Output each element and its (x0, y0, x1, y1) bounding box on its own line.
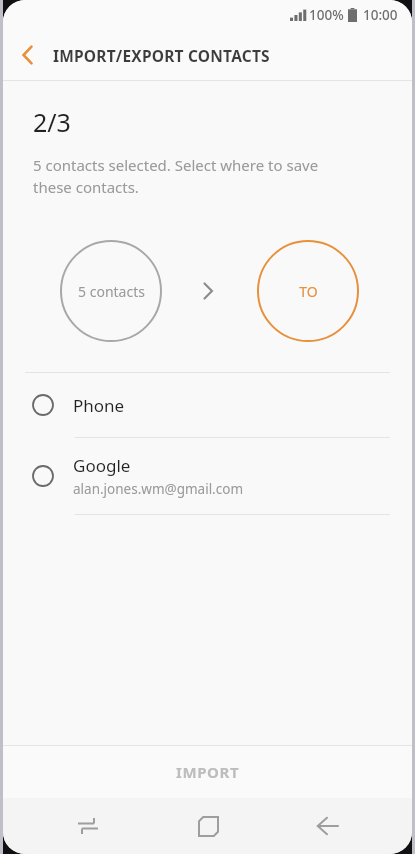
staticText: 2/3 (33, 105, 71, 139)
button[interactable]: 5 contacts (60, 240, 162, 342)
button[interactable]: Back (292, 798, 362, 854)
staticText: Google (73, 454, 131, 477)
staticText: 10:00 (363, 6, 398, 24)
staticText: IMPORT (176, 762, 240, 782)
button[interactable]: Home (173, 798, 243, 854)
button[interactable]: Google (3, 438, 412, 514)
staticText: 100% (309, 6, 344, 24)
staticText: 5 contacts (78, 282, 145, 301)
button[interactable]: TO (257, 240, 359, 342)
staticText: IMPORT/EXPORT CONTACTS (53, 45, 270, 66)
staticText: 5 contacts selected. Select where to sav… (33, 155, 319, 198)
staticText: alan.jones.wm@gmail.com (73, 480, 244, 498)
button[interactable]: Back (3, 30, 53, 80)
staticText: Phone (73, 394, 125, 417)
button[interactable]: IMPORT (3, 746, 412, 798)
button[interactable]: Recent apps (53, 798, 123, 854)
staticText: TO (299, 282, 318, 301)
button[interactable]: Phone (3, 373, 412, 437)
